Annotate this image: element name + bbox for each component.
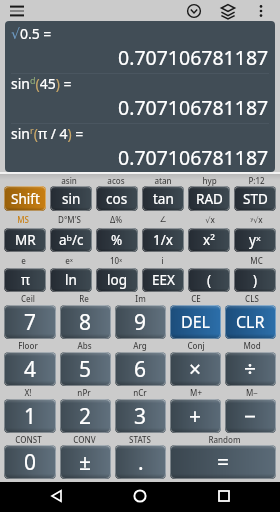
- staticText: cos: [106, 190, 128, 208]
- button[interactable]: 2: [60, 399, 111, 433]
- staticText: CLS: [245, 293, 259, 304]
- button[interactable]: 7: [4, 305, 56, 339]
- button[interactable]: More options: [252, 1, 270, 21]
- staticText: CLR: [236, 311, 265, 333]
- staticText: nPr: [77, 387, 91, 398]
- staticText: sinr(π / 4) =: [11, 124, 84, 142]
- staticText: Mod: [243, 340, 261, 351]
- button[interactable]: sin: [50, 186, 92, 211]
- staticText: CONV: [73, 434, 96, 445]
- staticText: 0.707106781187: [118, 144, 269, 171]
- staticText: ±: [79, 448, 92, 477]
- staticText: tan: [153, 190, 174, 208]
- staticText: hyp: [202, 175, 217, 186]
- button[interactable]: ÷: [225, 352, 276, 386]
- button[interactable]: Menu: [4, 1, 30, 21]
- button[interactable]: 6: [115, 352, 166, 386]
- button[interactable]: RAD: [188, 186, 230, 211]
- button[interactable]: Back: [35, 482, 79, 512]
- staticText: yˣ: [249, 231, 261, 249]
- button[interactable]: log: [96, 268, 138, 292]
- staticText: D°M'S: [58, 214, 81, 225]
- staticText: CONST: [15, 434, 42, 445]
- button[interactable]: DEL: [170, 305, 221, 339]
- staticText: MS: [17, 214, 29, 225]
- staticText: −: [244, 402, 257, 431]
- staticText: √x: [205, 214, 215, 225]
- staticText: Im: [135, 293, 146, 304]
- staticText: 0: [24, 448, 37, 477]
- staticText: Abs: [77, 340, 92, 351]
- staticText: MC: [250, 255, 263, 266]
- button[interactable]: aᵇ/c: [50, 228, 92, 252]
- button[interactable]: %: [96, 228, 138, 252]
- staticText: Shift: [11, 190, 40, 208]
- staticText: x²: [203, 231, 215, 249]
- button[interactable]: 1: [4, 399, 56, 433]
- button[interactable]: ln: [50, 268, 92, 292]
- staticText: Floor: [18, 340, 38, 351]
- staticText: 8: [79, 308, 92, 337]
- staticText: M−: [246, 387, 258, 398]
- button[interactable]: =: [170, 445, 276, 479]
- staticText: 2: [79, 402, 92, 431]
- staticText: STATS: [129, 434, 151, 445]
- staticText: Ceil: [21, 293, 35, 304]
- staticText: 4: [24, 355, 37, 384]
- button[interactable]: (: [188, 268, 230, 292]
- button[interactable]: CLR: [225, 305, 276, 339]
- button[interactable]: yˣ: [234, 228, 276, 252]
- staticText: ∠: [159, 215, 167, 224]
- staticText: ×: [189, 355, 202, 384]
- button[interactable]: MR: [4, 228, 46, 252]
- staticText: RAD: [196, 190, 223, 208]
- button[interactable]: ±: [60, 445, 111, 479]
- staticText: sind(45) =: [11, 74, 72, 92]
- button[interactable]: Home: [118, 482, 162, 512]
- button[interactable]: 1/x: [142, 228, 184, 252]
- button[interactable]: .: [115, 445, 166, 479]
- staticText: M+: [190, 387, 202, 398]
- button[interactable]: 3: [115, 399, 166, 433]
- button[interactable]: 9: [115, 305, 166, 339]
- staticText: 10ˣ: [110, 255, 122, 266]
- staticText: acos: [107, 175, 125, 186]
- button[interactable]: tan: [142, 186, 184, 211]
- staticText: Random: [208, 434, 241, 445]
- button[interactable]: 5: [60, 352, 111, 386]
- staticText: eˣ: [65, 255, 73, 266]
- staticText: CE: [191, 293, 201, 304]
- button[interactable]: 0: [4, 445, 56, 479]
- button[interactable]: History: [182, 1, 206, 21]
- button[interactable]: π: [4, 268, 46, 292]
- staticText: 5: [79, 355, 92, 384]
- staticText: +: [189, 402, 202, 431]
- button[interactable]: cos: [96, 186, 138, 211]
- button[interactable]: Recent apps: [202, 482, 246, 512]
- staticText: aᵇ/c: [59, 231, 84, 249]
- staticText: asin: [61, 175, 77, 186]
- staticText: EEX: [152, 271, 175, 289]
- button[interactable]: STD: [234, 186, 276, 211]
- staticText: 1: [24, 402, 37, 431]
- staticText: .: [138, 448, 144, 477]
- staticText: 3: [134, 402, 147, 431]
- staticText: log: [107, 271, 127, 289]
- staticText: e: [21, 255, 26, 266]
- button[interactable]: Shift: [4, 186, 46, 211]
- button[interactable]: ): [234, 268, 276, 292]
- button[interactable]: Layers: [216, 1, 240, 21]
- staticText: 9: [134, 308, 147, 337]
- button[interactable]: ×: [170, 352, 221, 386]
- button[interactable]: x²: [188, 228, 230, 252]
- button[interactable]: EEX: [142, 268, 184, 292]
- staticText: sin: [62, 190, 81, 208]
- button[interactable]: 4: [4, 352, 56, 386]
- staticText: MR: [15, 231, 36, 249]
- staticText: ln: [65, 271, 77, 289]
- button[interactable]: −: [225, 399, 276, 433]
- button[interactable]: +: [170, 399, 221, 433]
- button[interactable]: 8: [60, 305, 111, 339]
- staticText: DEL: [181, 311, 210, 333]
- staticText: π: [21, 271, 30, 289]
